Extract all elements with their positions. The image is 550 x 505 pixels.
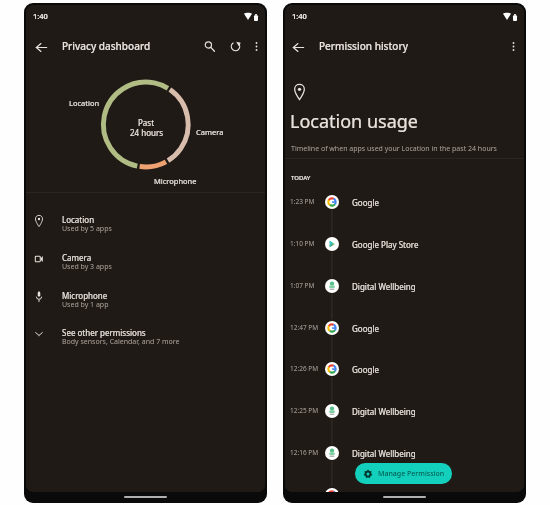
staticText: Used by 1 app [62,300,109,310]
staticText: Past [138,117,155,128]
staticText: 12:26 PM [290,364,319,373]
staticText: 1:40 [292,11,307,21]
staticText: 12:47 PM [290,323,319,332]
button[interactable]: 12:26 PM [285,348,524,390]
staticText: Location usage [290,109,418,134]
staticText: 12:25 PM [290,406,319,415]
button[interactable]: More options [503,36,523,56]
staticText: Location [62,214,95,225]
staticText: Digital Wellbeing [352,448,416,459]
staticText: TODAY [291,174,311,182]
staticText: Location [69,98,100,108]
button[interactable]: 1:07 PM [285,265,524,307]
staticText: Google Play Store [352,239,419,250]
button[interactable]: Location [26,204,265,242]
staticText: Google [352,197,379,208]
button[interactable]: Camera [26,242,265,280]
staticText: Camera [62,252,92,263]
button[interactable]: Microphone [26,280,265,318]
staticText: 12:16 PM [290,448,319,457]
staticText: Privacy dashboard [62,39,151,53]
button[interactable]: 1:23 PM [285,181,524,223]
staticText: 1:23 PM [290,197,315,206]
button[interactable]: 12:16 PM [285,432,524,474]
staticText: See other permissions [62,327,146,338]
button[interactable]: 12:10 PM [285,474,524,492]
staticText: Used by 5 apps [62,224,112,234]
button[interactable]: Search [199,36,219,56]
button[interactable]: Back [31,37,51,57]
staticText: Permission history [319,39,408,53]
staticText: Body sensors, Calendar, and 7 more [62,337,180,347]
staticText: 1:10 PM [290,239,315,248]
staticText: Used by 3 apps [62,262,112,272]
button[interactable]: See other permissions [26,317,265,355]
staticText: Timeline of when apps used your Location… [291,144,497,154]
staticText: 24 hours [130,127,164,138]
staticText: Google [352,364,379,375]
staticText: 1:07 PM [290,281,315,290]
button[interactable]: More options [246,36,265,56]
staticText: Camera [196,127,224,137]
staticText: Manage Permission [378,469,445,479]
staticText: Microphone [154,176,197,186]
staticText: Digital Wellbeing [352,406,416,417]
button[interactable]: Refresh [225,36,245,56]
staticText: Microphone [62,290,108,301]
button[interactable]: 12:25 PM [285,390,524,432]
button[interactable]: Manage Permission [355,463,452,484]
button[interactable]: 1:10 PM [285,223,524,265]
button[interactable]: 12:47 PM [285,307,524,349]
button[interactable]: Back [288,37,308,57]
staticText: Google [352,323,379,334]
staticText: Digital Wellbeing [352,281,416,292]
staticText: 1:40 [33,11,48,21]
